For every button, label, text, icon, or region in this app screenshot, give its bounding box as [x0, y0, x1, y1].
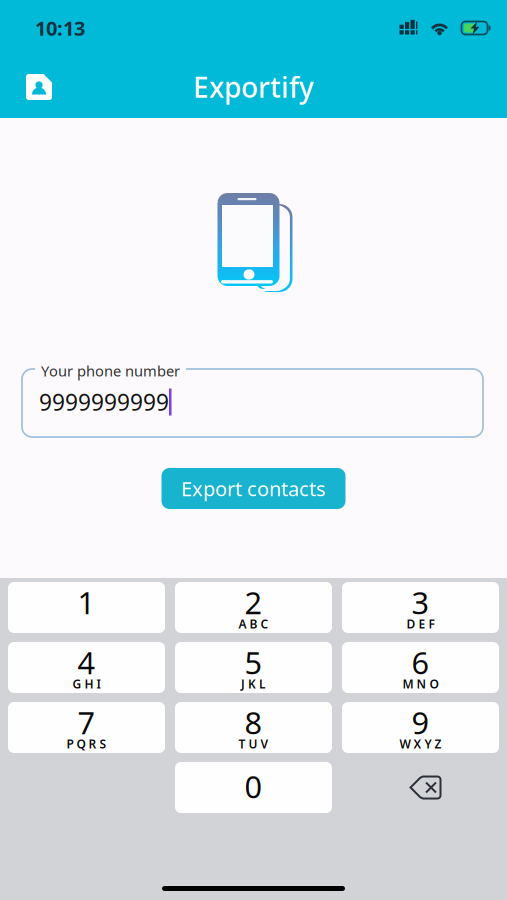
- staticText: A B C: [238, 616, 268, 632]
- staticText: 9: [411, 702, 429, 743]
- staticText: 10:13: [35, 15, 85, 41]
- staticText: 4: [77, 642, 95, 683]
- staticText: W X Y Z: [399, 736, 441, 752]
- staticText: M N O: [402, 676, 438, 692]
- button[interactable]: 0: [175, 762, 332, 813]
- staticText: 9999999999: [39, 387, 169, 417]
- staticText: 1: [77, 582, 95, 623]
- button[interactable]: Delete: [342, 762, 499, 813]
- staticText: D E F: [406, 616, 434, 632]
- staticText: 7: [77, 702, 95, 743]
- staticText: 5: [244, 642, 262, 683]
- button[interactable]: 1: [8, 582, 165, 633]
- button[interactable]: 5: [175, 642, 332, 693]
- button[interactable]: 2: [175, 582, 332, 633]
- staticText: 2: [244, 582, 262, 623]
- staticText: 3: [411, 582, 429, 623]
- staticText: 0: [244, 766, 262, 807]
- button[interactable]: 8: [175, 702, 332, 753]
- staticText: Export contacts: [181, 475, 326, 502]
- staticText: J K L: [241, 676, 266, 692]
- button[interactable]: Export contacts: [161, 468, 345, 509]
- staticText: Your phone number: [41, 361, 180, 380]
- button[interactable]: 7: [8, 702, 165, 753]
- button[interactable]: 4: [8, 642, 165, 693]
- button[interactable]: Contacts file: [0, 66, 64, 108]
- staticText: Exportify: [193, 68, 314, 106]
- staticText: P Q R S: [66, 736, 106, 752]
- button[interactable]: 9: [342, 702, 499, 753]
- button[interactable]: 6: [342, 642, 499, 693]
- button[interactable]: 3: [342, 582, 499, 633]
- staticText: 8: [244, 702, 262, 743]
- staticText: G H I: [72, 676, 100, 692]
- staticText: 6: [411, 642, 429, 683]
- staticText: T U V: [238, 736, 268, 752]
